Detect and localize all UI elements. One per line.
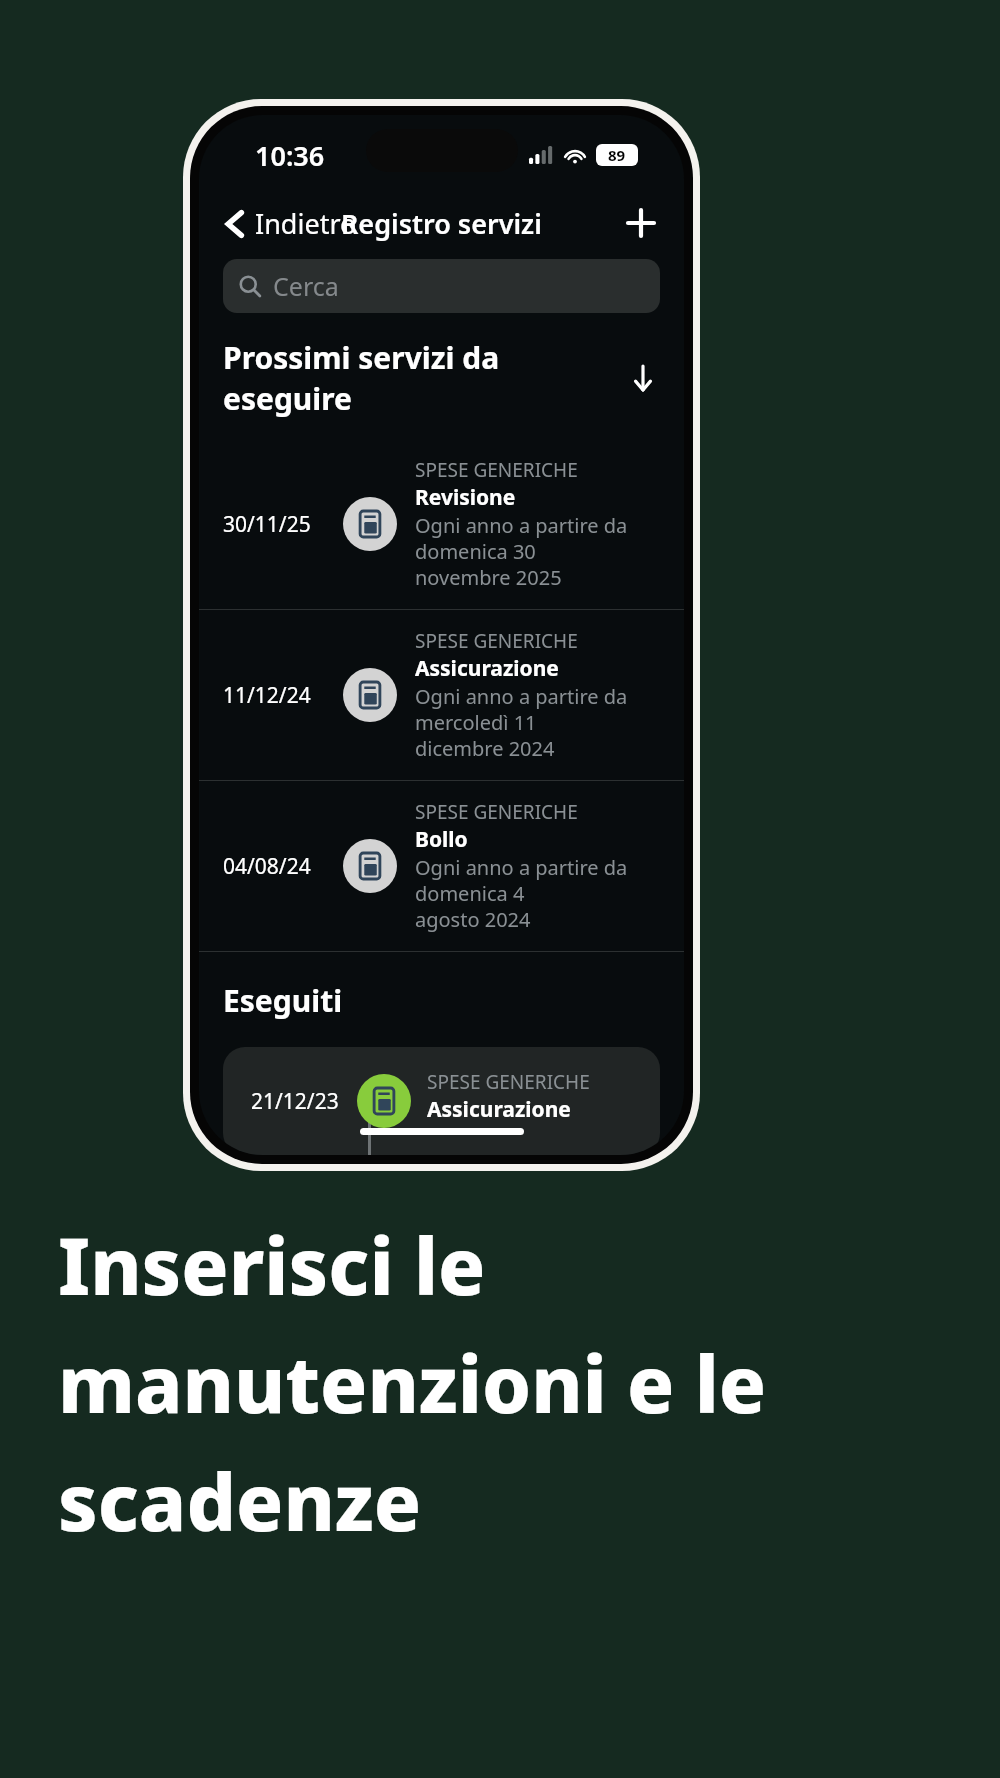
staticText: Ogni anno a partire da domenica 4 agosto… (415, 854, 666, 933)
staticText: 89 (608, 145, 626, 165)
staticText: SPESE GENERICHE (415, 799, 578, 825)
staticText: Ogni anno a partire da domenica 30 novem… (415, 512, 666, 591)
staticText: Eseguiti (223, 980, 660, 1021)
staticText: Assicurazione (427, 1095, 571, 1124)
staticText: Indietro (255, 205, 357, 242)
staticText: Revisione (415, 483, 516, 512)
staticText: 21/12/23 (251, 1087, 339, 1116)
button[interactable]: 11/12/24 (199, 610, 684, 780)
button[interactable]: Ordina (626, 359, 660, 397)
button[interactable]: 21/12/23 (223, 1069, 660, 1133)
staticText: 30/11/25 (223, 510, 325, 539)
button[interactable]: 30/11/25 (199, 439, 684, 609)
staticText: Ogni anno a partire da mercoledì 11 dice… (415, 683, 666, 762)
staticText: 10:36 (255, 137, 325, 174)
staticText: SPESE GENERICHE (415, 457, 578, 483)
button[interactable]: Cerca (223, 259, 660, 313)
staticText: scadenze (58, 1448, 422, 1554)
staticText: 04/08/24 (223, 852, 325, 881)
staticText: Inserisci le (58, 1212, 486, 1318)
button[interactable]: 04/08/24 (199, 781, 684, 951)
staticText: SPESE GENERICHE (427, 1069, 590, 1095)
staticText: Assicurazione (415, 654, 559, 683)
staticText: Prossimi servizi da eseguire (223, 337, 626, 419)
button[interactable]: Aggiungi (598, 194, 684, 252)
staticText: manutenzioni e le (58, 1330, 767, 1436)
staticText: 11/12/24 (223, 681, 325, 710)
staticText: 280,00 € (427, 1124, 511, 1133)
staticText: Cerca (273, 269, 339, 303)
staticText: SPESE GENERICHE (415, 628, 578, 654)
staticText: Bollo (415, 825, 468, 854)
staticText: Registro servizi (341, 205, 542, 242)
button[interactable]: Indietro (199, 197, 369, 250)
